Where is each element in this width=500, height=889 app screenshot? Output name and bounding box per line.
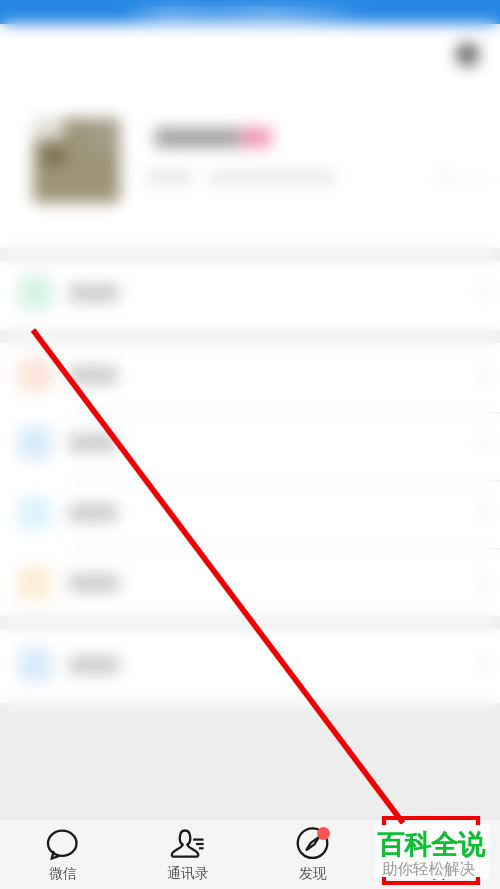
staticText: 微信 <box>49 865 77 883</box>
button[interactable]: Me <box>375 820 500 883</box>
button[interactable] <box>0 550 500 616</box>
staticText: 助你轻松解决 <box>382 859 475 879</box>
button[interactable] <box>0 480 500 546</box>
staticText: 我 <box>431 865 445 883</box>
button[interactable]: Contacts <box>125 820 250 883</box>
staticText: 通讯录 <box>167 865 209 883</box>
button[interactable] <box>0 342 500 408</box>
button[interactable] <box>3 260 497 326</box>
other: WeChat <box>46 828 79 861</box>
button[interactable] <box>3 550 497 616</box>
button[interactable]: WeChat <box>0 820 125 883</box>
button[interactable] <box>3 480 497 546</box>
button[interactable] <box>3 342 497 408</box>
button[interactable] <box>0 260 500 326</box>
button[interactable]: Discover <box>250 820 375 883</box>
other: Me <box>421 828 454 861</box>
button[interactable] <box>0 632 500 698</box>
other: Discover <box>296 828 329 861</box>
button[interactable] <box>3 632 497 698</box>
button[interactable] <box>3 410 497 476</box>
staticText: 发现 <box>299 865 327 883</box>
button[interactable] <box>0 410 500 476</box>
staticText: 百科全说 <box>377 828 485 862</box>
other: Contacts <box>171 828 204 861</box>
